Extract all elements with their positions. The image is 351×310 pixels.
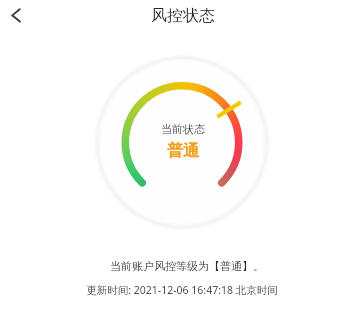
staticText: 当前状态: [161, 122, 205, 136]
staticText: 普通: [167, 141, 199, 161]
staticText: 更新时间: 2021-12-06 16:47:18 北京时间: [86, 283, 278, 297]
staticText: 当前账户风控等级为【普通】。: [110, 259, 264, 273]
staticText: 风控状态: [151, 6, 215, 26]
button[interactable]: Back: [0, 0, 34, 31]
